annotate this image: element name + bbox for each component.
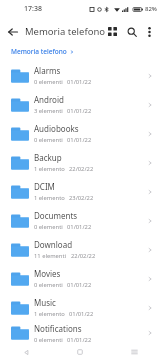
staticText: DCIM xyxy=(34,181,55,192)
staticText: 01/01/22 xyxy=(67,78,92,86)
button[interactable]: Music xyxy=(0,293,161,322)
button[interactable]: Download xyxy=(0,235,161,264)
button[interactable]: Search xyxy=(122,22,141,41)
staticText: 01/01/22 xyxy=(67,336,92,344)
button[interactable]: DCIM xyxy=(0,177,161,206)
staticText: 17:38 xyxy=(24,4,42,14)
staticText: 1 elemento xyxy=(34,194,65,202)
button[interactable]: Recents xyxy=(107,344,161,360)
button[interactable]: Audiobooks xyxy=(0,119,161,148)
staticText: 0 elementi xyxy=(34,136,63,144)
button[interactable]: Movies xyxy=(0,264,161,293)
staticText: Download xyxy=(34,239,73,250)
staticText: 01/01/22 xyxy=(67,136,92,144)
staticText: 01/01/22 xyxy=(67,281,92,289)
staticText: Android xyxy=(34,94,64,105)
staticText: Backup xyxy=(34,152,62,163)
staticText: 01/01/22 xyxy=(67,223,92,231)
staticText: Audiobooks xyxy=(34,123,79,134)
staticText: 0 elementi xyxy=(34,281,63,289)
button[interactable]: More options xyxy=(141,23,158,40)
staticText: 3 elementi xyxy=(34,107,63,115)
staticText: 0 elementi xyxy=(34,78,63,86)
staticText: 11 elementi xyxy=(34,252,67,260)
button[interactable]: Documents xyxy=(0,206,161,235)
staticText: 23/02/22 xyxy=(69,194,94,202)
staticText: 0 elementi xyxy=(34,223,63,231)
staticText: Memoria telefono xyxy=(25,25,106,38)
staticText: 1 elemento xyxy=(34,310,65,318)
button[interactable]: Backup xyxy=(0,148,161,177)
staticText: Notifications xyxy=(34,323,82,334)
button[interactable]: Home xyxy=(53,344,107,360)
staticText: Documents xyxy=(34,210,78,221)
staticText: 1 elemento xyxy=(34,165,65,173)
staticText: Alarms xyxy=(34,65,61,76)
staticText: 01/01/22 xyxy=(67,107,92,115)
staticText: Memoria telefono xyxy=(11,47,67,56)
button[interactable]: Back xyxy=(5,24,21,40)
staticText: 22/02/22 xyxy=(69,165,94,173)
button[interactable]: Grid view xyxy=(103,22,122,41)
staticText: Movies xyxy=(34,268,61,279)
button[interactable]: Alarms xyxy=(0,61,161,90)
staticText: 0 elementi xyxy=(34,336,63,344)
button[interactable]: Memoria telefono xyxy=(11,47,74,56)
staticText: 22/02/22 xyxy=(71,252,96,260)
staticText: 82% xyxy=(145,5,157,13)
staticText: 01/01/22 xyxy=(69,310,94,318)
staticText: Music xyxy=(34,297,56,308)
button[interactable]: Back xyxy=(0,344,53,360)
button[interactable]: Android xyxy=(0,90,161,119)
button[interactable]: Notifications xyxy=(0,322,161,344)
